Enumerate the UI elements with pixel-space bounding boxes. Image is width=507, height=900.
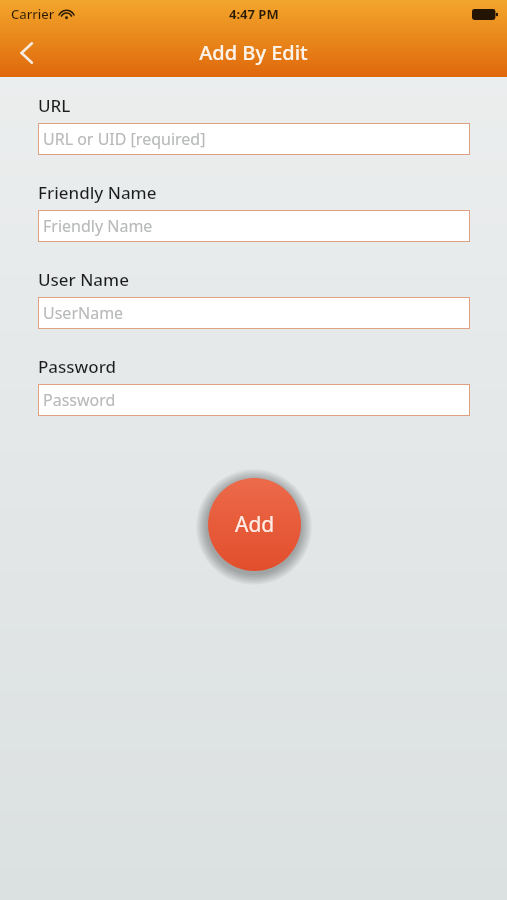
button[interactable]: URL or UID [required] xyxy=(38,123,470,155)
button[interactable]: Back xyxy=(0,28,52,77)
button[interactable]: Add xyxy=(208,478,301,571)
staticText: Add By Edit xyxy=(199,39,308,66)
staticText: Password xyxy=(43,389,116,411)
staticText: URL or UID [required] xyxy=(43,128,206,150)
staticText: 4:47 PM xyxy=(229,5,279,23)
staticText: Friendly Name xyxy=(38,181,157,204)
button[interactable]: UserName xyxy=(38,297,470,329)
staticText: Add xyxy=(235,510,275,539)
staticText: Carrier xyxy=(11,5,55,23)
staticText: User Name xyxy=(38,268,129,291)
button[interactable]: Friendly Name xyxy=(38,210,470,242)
staticText: URL xyxy=(38,94,71,117)
staticText: Friendly Name xyxy=(43,215,153,237)
staticText: Password xyxy=(38,355,117,378)
button[interactable]: Password xyxy=(38,384,470,416)
staticText: UserName xyxy=(43,302,124,324)
